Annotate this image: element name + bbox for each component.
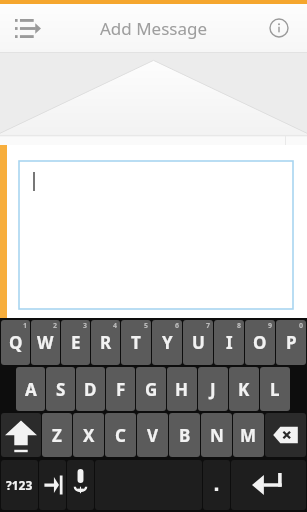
staticText: ?123: [6, 477, 33, 493]
staticText: N: [210, 424, 224, 447]
button[interactable]: Enter: [231, 460, 306, 510]
staticText: T: [131, 331, 141, 354]
staticText: 5: [144, 321, 149, 331]
staticText: W: [37, 331, 54, 354]
staticText: D: [84, 378, 97, 401]
staticText: X: [83, 424, 95, 447]
staticText: M: [240, 424, 257, 447]
button[interactable]: L: [260, 367, 290, 411]
staticText: 0: [299, 321, 304, 331]
button[interactable]: O: [245, 320, 275, 365]
staticText: S: [56, 378, 66, 401]
button[interactable]: Info: [259, 8, 299, 48]
staticText: 7: [206, 321, 211, 331]
button[interactable]: Voice input: [67, 460, 94, 510]
button[interactable]: X: [73, 413, 104, 457]
staticText: Add Message: [100, 17, 208, 40]
button[interactable]: [19, 161, 293, 309]
staticText: J: [210, 378, 216, 401]
staticText: 4: [113, 321, 118, 331]
staticText: Z: [52, 424, 62, 447]
staticText: 6: [175, 321, 180, 331]
staticText: L: [270, 378, 280, 401]
staticText: A: [25, 378, 37, 401]
button[interactable]: Period: [203, 460, 230, 510]
button[interactable]: F: [106, 367, 135, 411]
button[interactable]: C: [105, 413, 136, 457]
button[interactable]: M: [233, 413, 264, 457]
staticText: P: [286, 331, 297, 354]
staticText: Y: [162, 331, 173, 354]
staticText: E: [71, 331, 81, 354]
button[interactable]: I: [214, 320, 244, 365]
staticText: H: [175, 378, 189, 401]
staticText: F: [116, 378, 126, 401]
staticText: 9: [268, 321, 273, 331]
staticText: 2: [53, 321, 58, 331]
button[interactable]: S: [46, 367, 75, 411]
button[interactable]: T: [121, 320, 151, 365]
button[interactable]: Q: [1, 320, 30, 365]
staticText: 3: [83, 321, 88, 331]
button[interactable]: Y: [152, 320, 182, 365]
button[interactable]: A: [16, 367, 45, 411]
button[interactable]: R: [91, 320, 120, 365]
staticText: 8: [237, 321, 242, 331]
staticText: G: [145, 378, 158, 401]
staticText: O: [253, 331, 267, 354]
button[interactable]: Tab: [39, 460, 66, 510]
button[interactable]: Backspace: [265, 413, 306, 457]
button[interactable]: P: [276, 320, 306, 365]
button[interactable]: H: [167, 367, 197, 411]
button[interactable]: W: [31, 320, 60, 365]
button[interactable]: E: [61, 320, 90, 365]
button[interactable]: V: [137, 413, 168, 457]
staticText: I: [226, 331, 233, 354]
staticText: K: [238, 378, 250, 401]
button[interactable]: U: [183, 320, 213, 365]
staticText: C: [115, 424, 126, 447]
staticText: U: [192, 331, 205, 354]
button[interactable]: B: [169, 413, 200, 457]
staticText: Q: [9, 331, 23, 354]
button[interactable]: G: [136, 367, 166, 411]
staticText: V: [147, 424, 159, 447]
staticText: B: [179, 424, 191, 447]
button[interactable]: Shift: [1, 413, 41, 457]
button[interactable]: Z: [42, 413, 72, 457]
button[interactable]: J: [198, 367, 228, 411]
staticText: R: [100, 331, 112, 354]
button[interactable]: Message list: [8, 8, 48, 48]
button[interactable]: N: [201, 413, 232, 457]
staticText: 1: [23, 321, 28, 331]
button[interactable]: D: [76, 367, 105, 411]
button[interactable]: ?123: [1, 460, 38, 510]
button[interactable]: K: [229, 367, 259, 411]
